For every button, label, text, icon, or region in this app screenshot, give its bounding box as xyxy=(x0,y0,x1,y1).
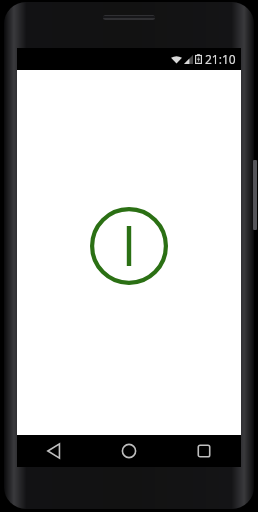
button[interactable]: Recent apps xyxy=(166,435,241,467)
button[interactable]: Home xyxy=(91,435,166,467)
button[interactable]: Power toggle xyxy=(86,203,172,289)
button[interactable]: Back xyxy=(17,435,91,467)
staticText: 21:10 xyxy=(205,51,236,67)
